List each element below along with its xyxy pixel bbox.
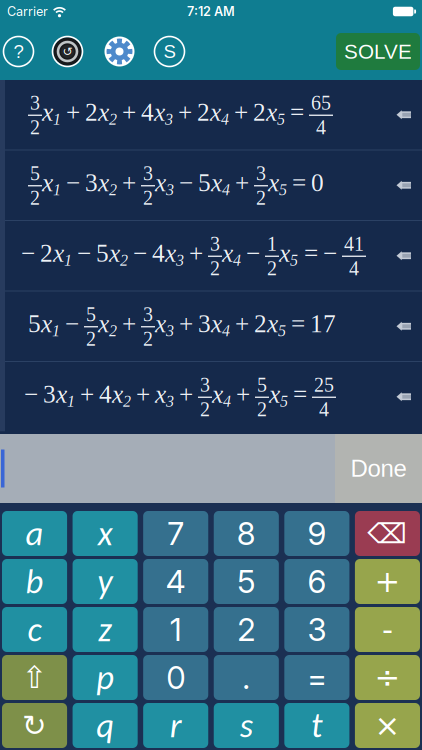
staticText: 25 (314, 374, 334, 396)
staticText: 1 (170, 610, 182, 648)
button[interactable]: z (73, 607, 138, 652)
staticText: 65 (311, 92, 331, 114)
staticText: 2 (30, 187, 40, 209)
button[interactable]: 5 (0, 150, 422, 220)
button[interactable]: Delete (355, 511, 420, 556)
button[interactable]: a (2, 511, 67, 556)
button[interactable]: p (73, 655, 138, 700)
staticText: Carrier (7, 4, 48, 19)
staticText: r (170, 704, 182, 747)
button[interactable]: − 3x1 + 4x2 + x3 + (0, 362, 422, 431)
button[interactable]: Settings (104, 36, 134, 66)
button[interactable]: 6 (284, 559, 349, 604)
button[interactable]: r (143, 703, 208, 748)
button[interactable]: Solutions (154, 36, 184, 66)
staticText: 7:12 AM (187, 4, 235, 19)
staticText: 9 (307, 514, 326, 552)
staticText: = (307, 658, 327, 696)
button[interactable]: 3 (0, 80, 422, 149)
button[interactable]: x (73, 511, 138, 556)
button[interactable]: 3 (284, 607, 349, 652)
staticText: x4 + (212, 380, 255, 410)
staticText: y (97, 560, 113, 603)
staticText: 6 (307, 562, 326, 600)
staticText: ÷ (374, 660, 400, 695)
staticText: p (96, 656, 114, 699)
button[interactable]: y (73, 559, 138, 604)
button[interactable]: 5x1 − (0, 291, 422, 361)
staticText: − 2x1 − 5x2 − 4x3 + (21, 239, 208, 269)
staticText: 3 (210, 233, 220, 255)
staticText: 1 (267, 233, 277, 255)
staticText: 5x1 − (28, 310, 84, 339)
staticText: 3 (143, 162, 153, 185)
button[interactable]: Help (3, 36, 33, 66)
staticText: 2 (30, 116, 40, 138)
staticText: 4 (316, 116, 326, 138)
staticText: ↻ (22, 708, 47, 742)
staticText: 0 (166, 658, 185, 696)
staticText: x1 + 2x2 + 4x3 + 2x4 + 2x5 = (42, 98, 309, 128)
button[interactable]: Shift (2, 655, 67, 700)
button[interactable]: 0 (143, 655, 208, 700)
button[interactable]: - (355, 607, 420, 652)
button[interactable]: . (214, 655, 279, 700)
staticText: z (98, 608, 112, 651)
staticText: 2 (210, 257, 220, 279)
staticText: 3 (307, 610, 326, 648)
staticText: x4 − (222, 239, 265, 269)
staticText: 3 (30, 92, 40, 114)
staticText: 4 (319, 398, 329, 420)
staticText: c (27, 608, 41, 651)
button[interactable]: c (2, 607, 67, 652)
button[interactable]: History (52, 36, 82, 66)
staticText: 3 (143, 303, 153, 326)
staticText: SOLVE (344, 40, 412, 63)
staticText: ↺ (62, 44, 72, 58)
button[interactable]: Undo (2, 703, 67, 748)
button[interactable]: − 2x1 − 5x2 − 4x3 + (0, 221, 422, 290)
button[interactable]: 4 (143, 559, 208, 604)
button[interactable]: t (284, 703, 349, 748)
staticText: 3 (200, 374, 210, 396)
staticText: S (163, 41, 175, 62)
staticText: b (25, 560, 43, 603)
staticText: × (374, 708, 400, 743)
button[interactable]: 2 (214, 607, 279, 652)
button[interactable]: s (214, 703, 279, 748)
staticText: x5 = 0 (268, 169, 324, 198)
staticText: 5 (237, 562, 255, 600)
staticText: 2 (256, 187, 266, 209)
staticText: + (374, 564, 400, 599)
button[interactable]: Done (335, 434, 422, 503)
staticText: t (311, 704, 323, 747)
staticText: 5 (257, 374, 267, 396)
staticText: x5 = (269, 380, 312, 410)
button[interactable]: ÷ (355, 655, 420, 700)
button[interactable]: = (284, 655, 349, 700)
button[interactable]: + (355, 559, 420, 604)
staticText: x5 = − (279, 239, 342, 269)
staticText: ? (13, 41, 23, 62)
staticText: . (242, 658, 250, 696)
staticText: 41 (344, 233, 364, 255)
button[interactable]: 7 (143, 511, 208, 556)
staticText: 8 (237, 514, 256, 552)
staticText: x (98, 512, 113, 555)
button[interactable]: SOLVE (336, 33, 420, 70)
staticText: 2 (143, 328, 153, 350)
staticText: 5 (86, 303, 96, 326)
button[interactable]: 5 (214, 559, 279, 604)
staticText: q (96, 704, 114, 747)
button[interactable]: 9 (284, 511, 349, 556)
button[interactable]: b (2, 559, 67, 604)
staticText: x1 − 3x2 + (42, 169, 141, 198)
staticText: ⇧ (21, 660, 47, 695)
staticText: x2 + (98, 310, 141, 339)
staticText: 2 (267, 257, 277, 279)
button[interactable]: × (355, 703, 420, 748)
button[interactable]: 8 (214, 511, 279, 556)
button[interactable]: q (73, 703, 138, 748)
button[interactable]: 1 (143, 607, 208, 652)
staticText: ⌫ (367, 517, 407, 550)
